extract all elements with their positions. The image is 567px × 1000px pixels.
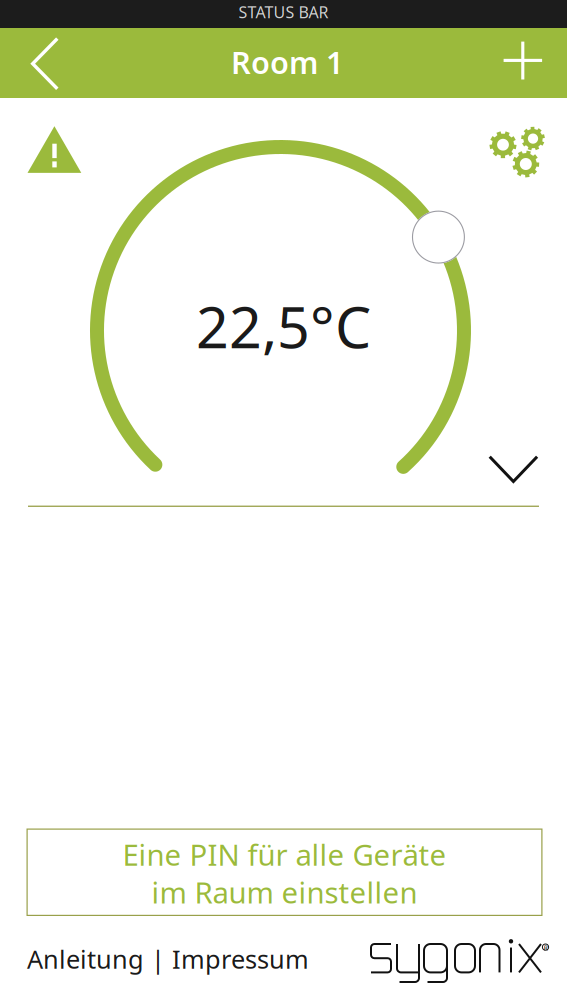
button[interactable]: Eine PIN für alle Geräte [26, 828, 542, 916]
button[interactable]: Set temperature [412, 211, 465, 264]
staticText: 22,5°C [196, 288, 371, 364]
button[interactable]: Anleitung [27, 942, 144, 976]
button[interactable]: Add [479, 28, 567, 98]
button[interactable]: Expand [488, 455, 539, 484]
staticText: STATUS BAR [238, 1, 328, 23]
staticText: Anleitung [27, 942, 144, 976]
staticText: im Raum einstellen [151, 873, 417, 912]
staticText: Eine PIN für alle Geräte [122, 835, 446, 874]
staticText: R [544, 943, 548, 952]
staticText: Impressum [172, 942, 309, 976]
button[interactable]: Settings [490, 126, 548, 180]
staticText: | [144, 942, 172, 976]
button[interactable]: Impressum [172, 942, 309, 976]
staticText: Room 1 [231, 42, 344, 82]
button[interactable]: Warning [27, 126, 81, 173]
button[interactable]: Back [0, 28, 88, 98]
